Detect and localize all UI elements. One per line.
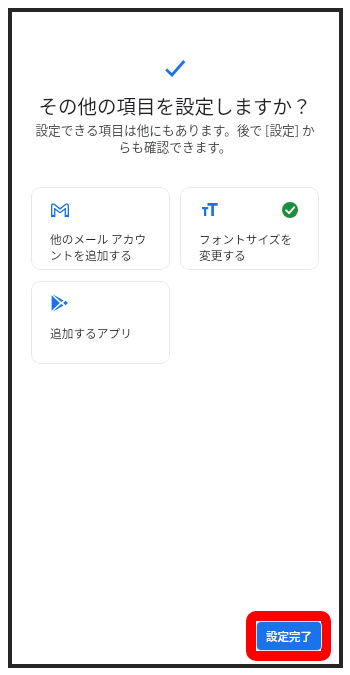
staticText: フォントサイズを 変更する <box>199 230 306 263</box>
button[interactable]: フォントサイズを 変更する <box>180 187 319 270</box>
staticText: 他のメール アカウ ントを追加する <box>50 230 157 263</box>
button[interactable]: 他のメール アカウ ントを追加する <box>31 187 170 270</box>
button[interactable]: 設定完了 <box>257 622 321 650</box>
staticText: 追加するアプリ <box>50 324 157 341</box>
staticText: その他の項目を設定しますか？ <box>0 91 350 119</box>
staticText: 設定完了 <box>266 628 312 645</box>
other: Setup complete <box>165 59 186 77</box>
staticText: 設定できる項目は他にもあります。後で [設定] か らも確認できます。 <box>14 120 336 155</box>
button[interactable]: 追加するアプリ <box>31 281 170 364</box>
